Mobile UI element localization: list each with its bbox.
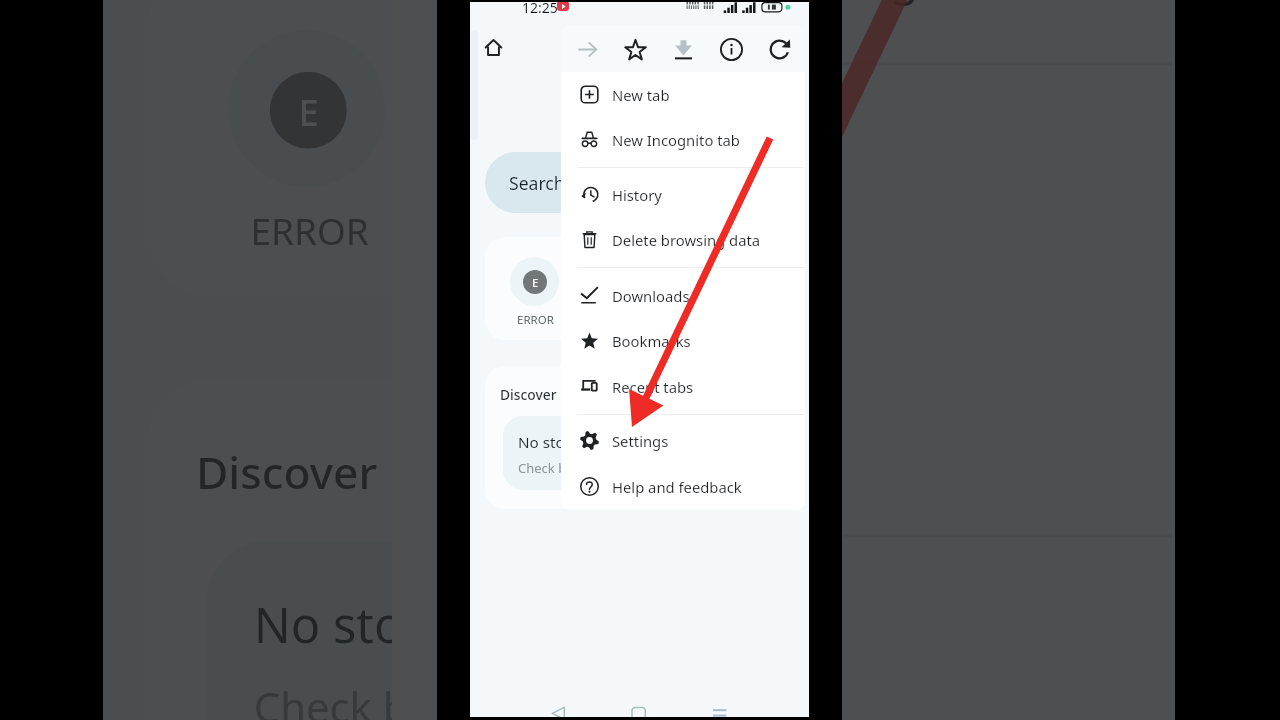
staticText: Settings bbox=[612, 431, 669, 451]
staticText: Discover bbox=[500, 385, 557, 404]
button[interactable]: Settings bbox=[561, 418, 805, 463]
button[interactable]: New Incognito tab bbox=[561, 117, 805, 162]
button[interactable]: Help and feedback bbox=[561, 464, 805, 509]
staticText: No stories available bbox=[518, 432, 658, 453]
button[interactable]: History bbox=[561, 172, 805, 217]
button[interactable]: New tab bbox=[561, 72, 805, 117]
staticText: Bookmarks bbox=[612, 331, 691, 351]
button[interactable]: Downloads bbox=[561, 273, 805, 318]
staticText: Recent tabs bbox=[612, 377, 694, 397]
staticText: Downloads bbox=[612, 286, 690, 306]
staticText: New tab bbox=[612, 85, 670, 105]
staticText: E bbox=[299, 88, 321, 136]
staticText: ERROR bbox=[517, 312, 554, 328]
button[interactable]: Search or type URL bbox=[485, 152, 795, 213]
staticText: No stories available bbox=[254, 592, 437, 659]
staticText: History bbox=[612, 185, 662, 205]
staticText: 12:25 bbox=[522, 0, 558, 15]
staticText: Delete browsing data bbox=[612, 230, 761, 250]
button[interactable]: Page info bbox=[709, 27, 753, 71]
button[interactable]: Home bbox=[473, 27, 513, 67]
button[interactable]: Bookmarks bbox=[561, 318, 805, 363]
button[interactable]: Forward bbox=[565, 27, 609, 71]
staticText: Help and feedback bbox=[612, 477, 742, 497]
staticText: Delete browsing data bbox=[842, 0, 1034, 7]
button[interactable]: Recent tabs bbox=[561, 364, 805, 409]
button[interactable]: Delete browsing data bbox=[561, 217, 805, 262]
staticText: ERROR bbox=[251, 206, 369, 258]
button[interactable]: Reload bbox=[757, 27, 801, 71]
staticText: Check back later bbox=[518, 459, 619, 477]
staticText: E bbox=[532, 275, 539, 290]
staticText: Search or type URL bbox=[509, 171, 666, 195]
staticText: Check back later bbox=[254, 678, 437, 720]
staticText: Discover bbox=[196, 441, 379, 502]
button[interactable]: Bookmark this page bbox=[613, 27, 657, 71]
staticText: New Incognito tab bbox=[612, 130, 740, 150]
button[interactable]: Download page bbox=[661, 27, 705, 71]
